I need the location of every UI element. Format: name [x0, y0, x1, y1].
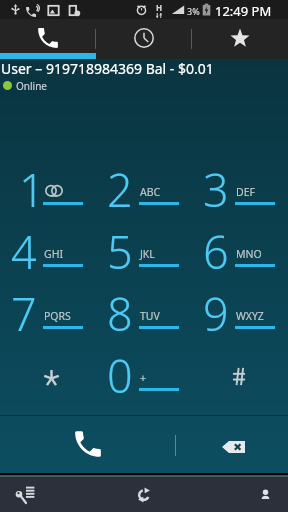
staticText: H — [156, 2, 163, 13]
staticText: DEF — [236, 185, 255, 199]
button[interactable]: 2 — [96, 167, 192, 229]
staticText: 3 — [203, 159, 229, 220]
staticText: 2 — [107, 159, 133, 220]
staticText: 5 — [107, 221, 133, 282]
button[interactable]: 5 — [96, 229, 192, 291]
button[interactable] — [192, 353, 288, 415]
staticText: 0 — [107, 345, 133, 406]
button[interactable]: 8 — [96, 291, 192, 353]
button[interactable]: Call — [0, 416, 175, 475]
button[interactable]: Search — [5, 477, 45, 512]
staticText: User – 919718984369 Bal - $0.01 — [1, 59, 214, 78]
button[interactable]: 6 — [192, 229, 288, 291]
staticText: TUV — [140, 309, 160, 323]
button[interactable]: Account — [250, 477, 281, 512]
staticText: 8 — [107, 283, 133, 344]
button[interactable]: Refresh — [127, 477, 161, 512]
staticText: 3% — [187, 5, 200, 17]
button[interactable]: 1 — [0, 167, 96, 229]
staticText: 4 — [11, 221, 37, 282]
staticText: MNO — [236, 247, 262, 261]
button[interactable]: Dialpad tab — [0, 19, 96, 59]
button[interactable]: Recents tab — [96, 19, 192, 59]
staticText: ABC — [140, 185, 161, 199]
button[interactable]: Backspace — [176, 416, 288, 475]
staticText: 1 — [19, 159, 45, 220]
staticText: Online — [16, 79, 47, 93]
button[interactable]: Favourites tab — [192, 19, 288, 59]
button[interactable]: User – 919718984369 Bal - $0.01 — [0, 59, 288, 95]
staticText: JKL — [140, 247, 155, 261]
button[interactable] — [0, 353, 96, 415]
staticText: 6 — [203, 221, 229, 282]
staticText: 12:49 PM — [215, 2, 272, 20]
button[interactable]: 3 — [192, 167, 288, 229]
staticText: + — [140, 371, 147, 385]
staticText: WXYZ — [236, 309, 264, 323]
staticText: 9 — [203, 283, 229, 344]
button[interactable]: 7 — [0, 291, 96, 353]
button[interactable]: 0 — [96, 353, 192, 415]
button[interactable]: 4 — [0, 229, 96, 291]
staticText: GHI — [44, 247, 63, 261]
button[interactable]: 9 — [192, 291, 288, 353]
staticText: PQRS — [44, 309, 71, 323]
staticText: 7 — [11, 283, 37, 344]
